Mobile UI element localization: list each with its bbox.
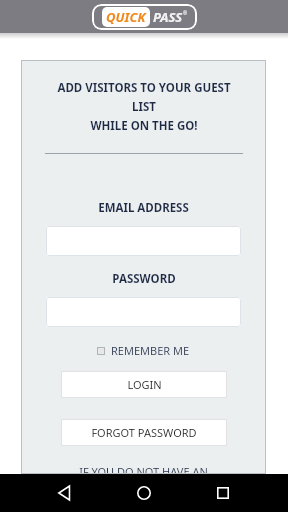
staticText: QUICK: [106, 8, 146, 26]
staticText: ADD VISITORS TO YOUR GUEST: [57, 80, 231, 96]
button[interactable]: QuickPass logo: [92, 4, 197, 30]
button[interactable]: Back: [49, 477, 81, 509]
staticText: LIST: [132, 99, 156, 115]
button[interactable]: LOGIN: [61, 371, 227, 398]
staticText: PASS: [153, 8, 183, 26]
button[interactable]: FORGOT PASSWORD: [61, 419, 227, 446]
staticText: LOGIN: [127, 377, 162, 392]
staticText: FORGOT PASSWORD: [91, 425, 197, 440]
button[interactable]: REMEMBER ME: [93, 341, 194, 360]
staticText: REMEMBER ME: [111, 343, 190, 358]
button[interactable]: [46, 297, 241, 327]
button[interactable]: Recent apps: [207, 477, 239, 509]
staticText: ®: [183, 10, 188, 17]
staticText: IF YOU DO NOT HAVE AN: [79, 464, 208, 474]
button[interactable]: [46, 226, 241, 256]
staticText: PASSWORD: [112, 271, 176, 287]
staticText: WHILE ON THE GO!: [90, 118, 198, 134]
button[interactable]: Home: [128, 477, 160, 509]
staticText: EMAIL ADDRESS: [98, 200, 189, 216]
